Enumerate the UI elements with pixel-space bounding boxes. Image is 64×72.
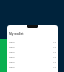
button[interactable]: Item: [7, 49, 58, 54]
staticText: My wallet: [9, 32, 24, 36]
staticText: 12: [53, 50, 56, 53]
staticText: 12: [53, 65, 56, 68]
staticText: 12: [53, 55, 56, 58]
button[interactable]: Item: [7, 64, 58, 69]
staticText: 12: [53, 45, 56, 48]
staticText: Item: [9, 40, 15, 43]
staticText: Item: [9, 65, 15, 68]
button[interactable]: Item: [7, 54, 58, 59]
staticText: 12: [53, 40, 56, 43]
staticText: Item: [9, 55, 15, 58]
button[interactable]: Item: [7, 59, 58, 64]
staticText: 12: [53, 60, 56, 63]
button[interactable]: Item: [7, 39, 58, 44]
staticText: Item: [9, 60, 15, 63]
staticText: Item: [9, 45, 15, 48]
button[interactable]: Item: [7, 44, 58, 49]
staticText: Item: [9, 50, 15, 53]
